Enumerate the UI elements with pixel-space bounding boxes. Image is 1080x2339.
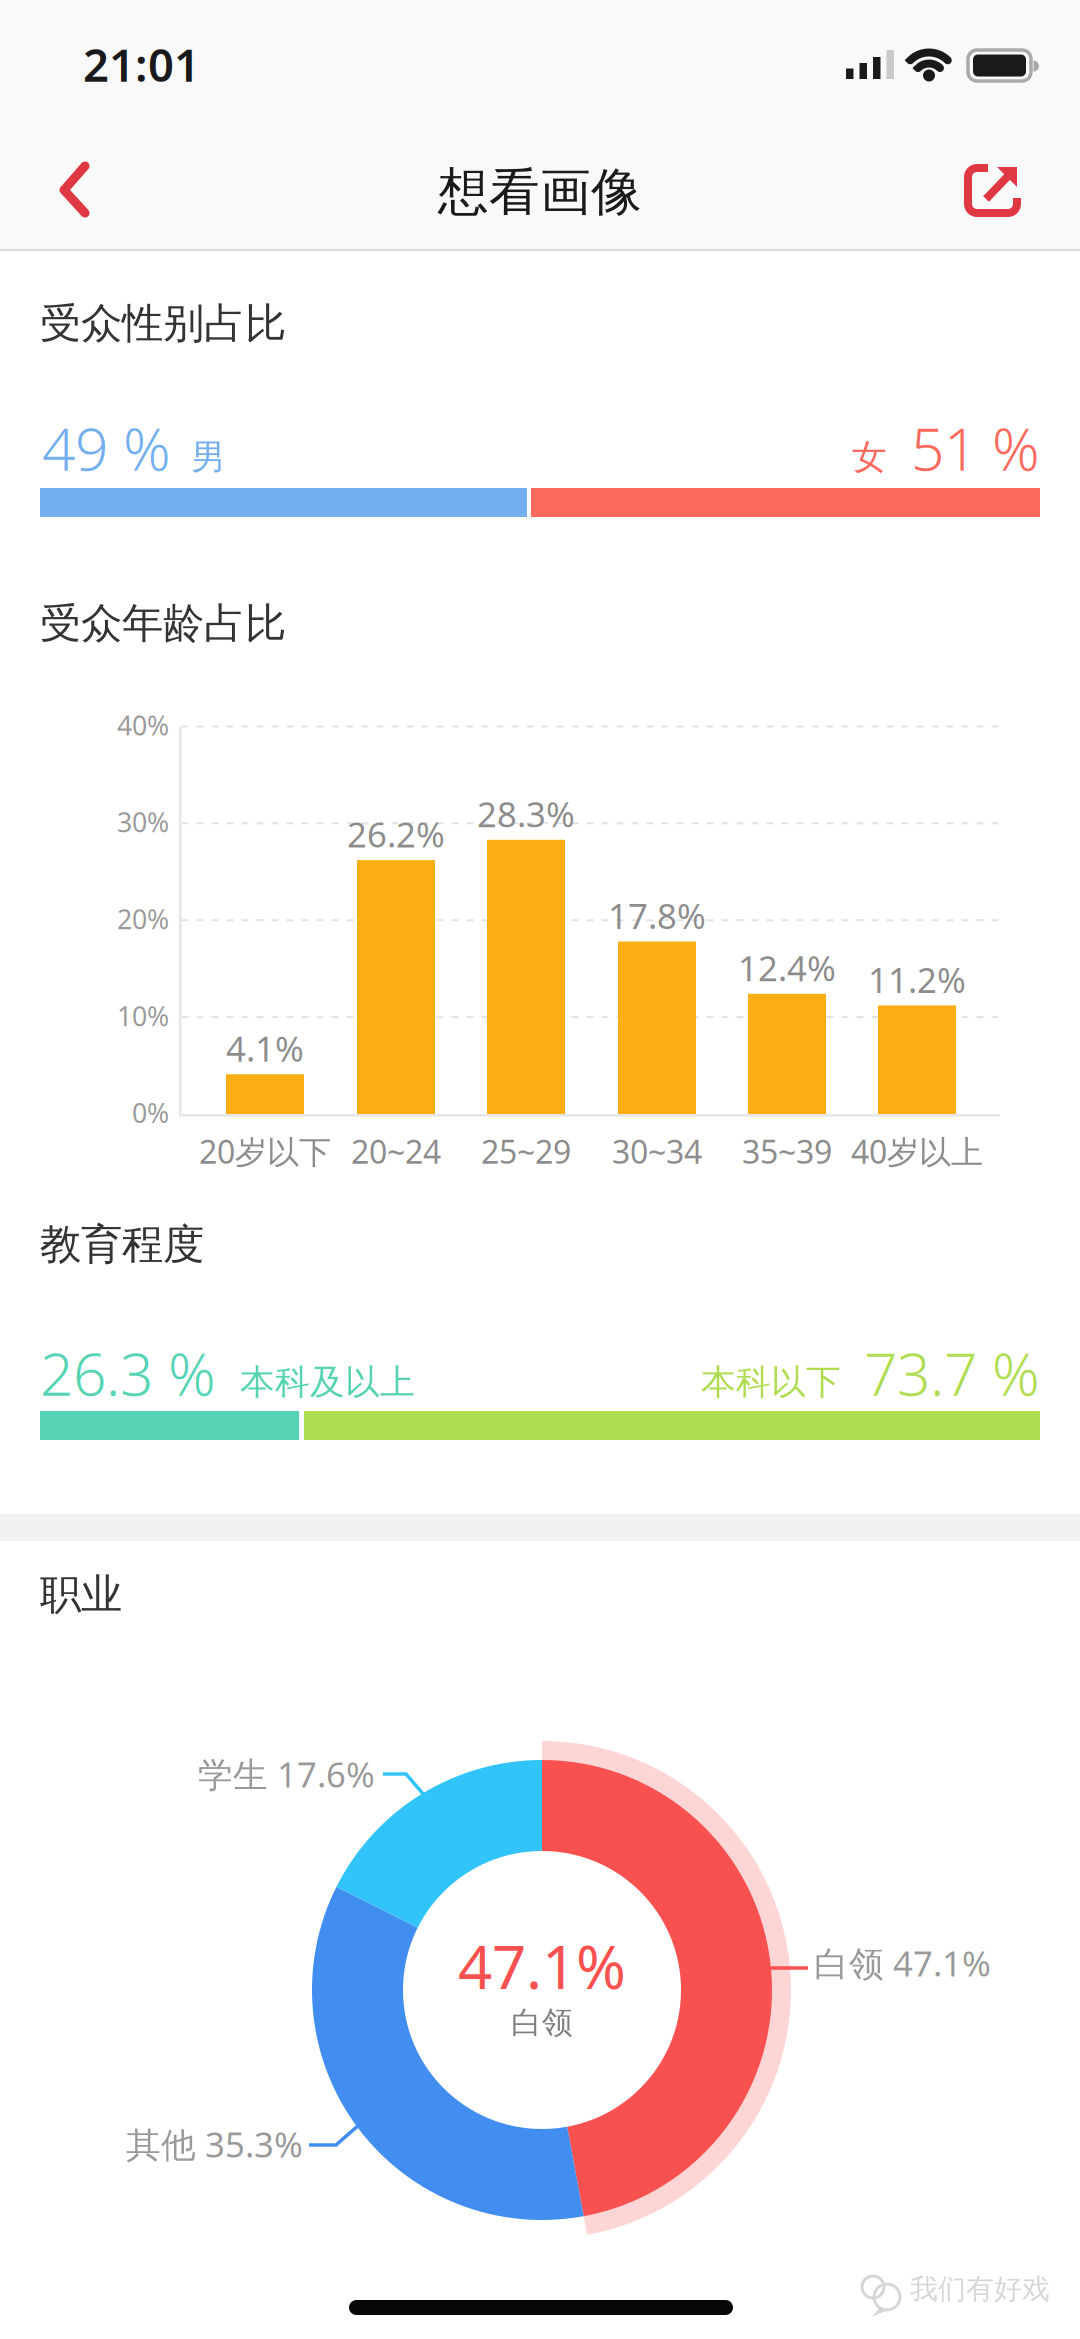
staticText: 教育程度 (40, 1219, 204, 1270)
staticText: 男 (191, 436, 226, 479)
staticText: 职业 (40, 1569, 122, 1620)
staticText: 20岁以下 (199, 1130, 331, 1172)
button[interactable]: Back (20, 140, 130, 238)
staticText: 40岁以上 (851, 1130, 983, 1172)
staticText: 本科及以上 (240, 1361, 415, 1404)
staticText: 白领 47.1% (814, 1940, 991, 1986)
staticText: 17.8% (608, 892, 706, 938)
staticText: 40% (117, 707, 169, 743)
staticText: 30% (117, 804, 169, 840)
staticText: 28.3% (477, 791, 575, 837)
staticText: 想看画像 (438, 161, 642, 223)
staticText: 49 % (42, 409, 171, 487)
staticText: 受众年龄占比 (40, 598, 286, 649)
staticText: 学生 17.6% (198, 1751, 375, 1797)
staticText: 30~34 (612, 1130, 702, 1172)
staticText: 女 (852, 436, 887, 479)
staticText: 我们有好戏 (910, 2272, 1050, 2306)
staticText: 白领 (511, 2004, 573, 2042)
staticText: 其他 35.3% (126, 2121, 303, 2167)
staticText: 26.3 % (40, 1334, 216, 1412)
staticText: 20% (117, 901, 169, 937)
staticText: 0% (132, 1095, 169, 1130)
staticText: 26.2% (347, 811, 445, 857)
staticText: 25~29 (481, 1130, 571, 1172)
staticText: 21:01 (83, 34, 200, 94)
staticText: 73.7 % (864, 1334, 1040, 1412)
staticText: 20~24 (351, 1130, 441, 1172)
button[interactable]: Share (940, 140, 1060, 238)
staticText: 本科以下 (701, 1361, 841, 1404)
staticText: 51 % (911, 409, 1040, 487)
staticText: 受众性别占比 (40, 298, 286, 349)
staticText: 10% (117, 998, 169, 1033)
staticText: 11.2% (868, 956, 966, 1002)
staticText: 4.1% (226, 1025, 304, 1071)
staticText: 47.1% (458, 1926, 626, 2006)
staticText: 12.4% (738, 945, 836, 991)
staticText: 35~39 (742, 1130, 832, 1172)
